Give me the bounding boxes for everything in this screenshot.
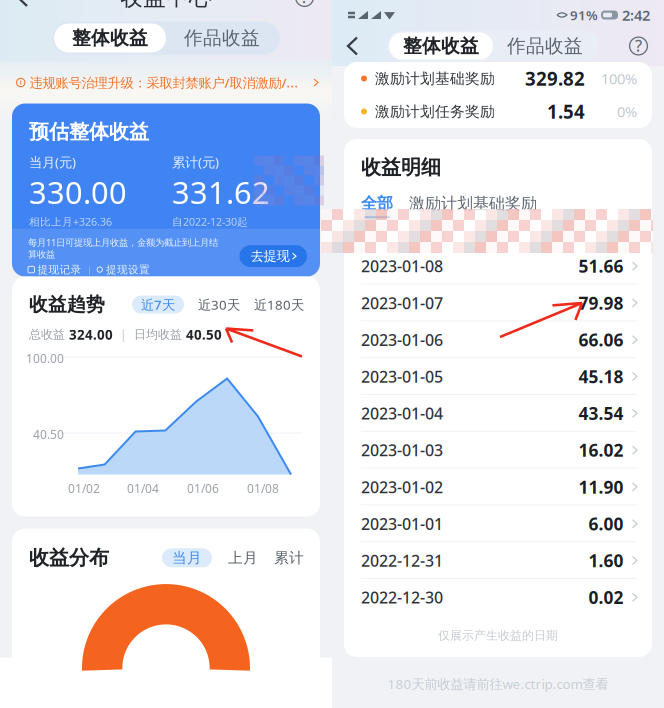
staticText: 激励计划基础奖励 <box>375 69 495 87</box>
button[interactable]: 2023-01-05 <box>344 359 652 395</box>
staticText: | <box>86 263 91 276</box>
staticText: 近7天 <box>141 296 175 313</box>
staticText: 2:42 <box>622 5 650 25</box>
staticText: 324.00 <box>69 326 113 343</box>
button[interactable]: 违规账号治理升级：采取封禁账户/取消激励/扣除已获… <box>0 68 332 96</box>
button[interactable]: Back <box>332 29 367 62</box>
button[interactable]: 2023-01-06 <box>344 322 652 359</box>
button[interactable]: Help <box>619 27 664 65</box>
staticText: 1.54 <box>547 99 585 124</box>
button[interactable]: 近180天 <box>240 295 304 313</box>
button[interactable]: 激励计划基础奖励 <box>409 194 537 218</box>
staticText: 近30天 <box>198 296 240 313</box>
button[interactable]: 作品收益 <box>493 32 597 59</box>
staticText: 2023-01-03 <box>361 439 443 461</box>
button[interactable]: 整体收益 <box>54 23 166 52</box>
button[interactable]: 作品收益 <box>166 23 278 52</box>
staticText: 作品收益 <box>507 34 583 57</box>
staticText: 当月(元) <box>29 153 76 171</box>
staticText: 2023-01-06 <box>361 329 443 350</box>
staticText: 40.50 <box>186 326 222 343</box>
staticText: 2022-12-30 <box>361 587 443 608</box>
staticText: 相比上月+326.36 <box>29 214 112 229</box>
staticText: 每月11日可提现上月收益，金额为截止到上月结 <box>28 236 218 249</box>
button[interactable]: 全部 <box>361 194 393 218</box>
staticText: 去提现 <box>250 248 289 264</box>
staticText: 全部 <box>361 194 393 213</box>
button[interactable]: 2023-01-04 <box>344 395 652 432</box>
staticText: 40.50 <box>33 426 64 442</box>
staticText: 331.62 <box>172 172 270 212</box>
staticText: 累计 <box>274 549 304 567</box>
staticText: 330.00 <box>29 172 127 212</box>
staticText: 91% <box>570 6 598 24</box>
staticText: 100% <box>601 69 637 88</box>
staticText: 2022-12-31 <box>361 550 443 571</box>
staticText: 激励计划基础奖励 <box>409 194 537 213</box>
staticText: 2023-01-05 <box>361 366 443 387</box>
staticText: 当月 <box>172 549 202 567</box>
staticText: 79.98 <box>578 291 623 314</box>
staticText: 收益明细 <box>361 155 441 180</box>
button[interactable]: 当月 <box>162 548 212 567</box>
staticText: 100.00 <box>26 350 64 366</box>
staticText: 自2022-12-30起 <box>172 214 248 229</box>
staticText: 6.00 <box>588 512 623 535</box>
staticText: 上月 <box>228 549 258 567</box>
staticText: 01/04 <box>127 480 159 496</box>
button[interactable]: 2023-01-07 <box>344 285 652 322</box>
staticText: 2023-01-08 <box>361 255 443 277</box>
staticText: 1.60 <box>588 549 623 572</box>
button[interactable]: Back <box>0 0 41 14</box>
staticText: 收益中心 <box>120 0 212 11</box>
staticText: 总收益 <box>29 327 65 342</box>
button[interactable]: 2022-12-31 <box>344 543 652 579</box>
staticText: 0% <box>617 102 637 121</box>
button[interactable]: 2023-01-08 <box>344 248 652 285</box>
button[interactable]: 2023-01-02 <box>344 469 652 506</box>
staticText: 日均收益 <box>134 327 182 342</box>
staticText: 提现记录 <box>37 263 81 276</box>
staticText: 11.90 <box>578 475 623 498</box>
button[interactable]: Help <box>281 0 332 16</box>
staticText: 作品收益 <box>184 26 260 49</box>
staticText: 180天前收益请前往we.ctrip.com查看 <box>387 675 608 693</box>
button[interactable]: 2023-01-01 <box>344 506 652 543</box>
button[interactable]: 上月 <box>212 549 258 567</box>
button[interactable]: 去提现 <box>239 245 307 267</box>
button[interactable]: 近30天 <box>184 295 240 313</box>
staticText: 算收益 <box>28 249 55 260</box>
staticText: 0.02 <box>588 586 623 609</box>
staticText: 51.66 <box>578 255 623 278</box>
staticText: 2023-01-07 <box>361 292 443 313</box>
staticText: 01/06 <box>187 480 219 496</box>
button[interactable]: 2022-12-30 <box>344 579 652 616</box>
staticText: 整体收益 <box>72 26 148 49</box>
staticText: | <box>120 326 127 342</box>
staticText: 2023-01-01 <box>361 513 443 534</box>
staticText: 收益趋势 <box>29 293 105 316</box>
staticText: ? <box>301 0 308 8</box>
staticText: 累计(元) <box>172 153 219 171</box>
button[interactable]: 累计 <box>258 549 304 567</box>
staticText: 预估整体收益 <box>29 119 149 144</box>
staticText: 提现设置 <box>106 263 150 276</box>
staticText: 仅展示产生收益的日期 <box>438 628 558 643</box>
staticText: ? <box>635 35 642 56</box>
staticText: 329.82 <box>525 66 585 91</box>
staticText: 66.06 <box>578 328 623 351</box>
staticText: 收益分布 <box>29 545 109 570</box>
staticText: 01/08 <box>247 480 279 496</box>
staticText: 违规账号治理升级：采取封禁账户/取消激励/扣除已获… <box>29 74 306 91</box>
staticText: 整体收益 <box>403 34 479 57</box>
staticText: 16.02 <box>578 439 623 462</box>
button[interactable]: 近7天 <box>132 295 184 313</box>
staticText: 01/02 <box>68 480 100 496</box>
staticText: 2023-01-02 <box>361 476 443 497</box>
staticText: 2023-01-04 <box>361 403 443 424</box>
staticText: 43.54 <box>578 402 623 425</box>
button[interactable]: 整体收益 <box>389 32 493 59</box>
staticText: 近180天 <box>254 296 304 313</box>
staticText: 45.18 <box>578 365 623 388</box>
button[interactable]: 2023-01-03 <box>344 432 652 469</box>
